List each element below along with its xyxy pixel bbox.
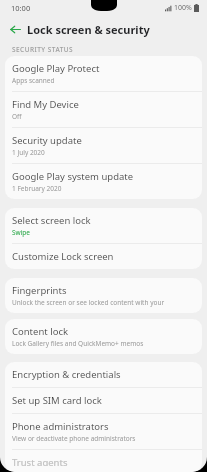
staticText: Customize Lock screen (12, 250, 114, 263)
staticText: Lock screen & security (27, 22, 150, 37)
button[interactable]: Encryption & credentials (5, 362, 202, 387)
staticText: Encryption & credentials (12, 368, 121, 381)
staticText: Google Play system update (12, 170, 134, 183)
staticText: 10:00 (11, 3, 31, 13)
button[interactable]: Fingerprints (5, 278, 202, 313)
staticText: Find My Device (12, 98, 79, 111)
button[interactable]: Customize Lock screen (5, 244, 202, 269)
staticText: Set up SIM card lock (12, 394, 102, 407)
button[interactable]: Back (6, 20, 24, 38)
staticText: Swipe (12, 228, 31, 237)
button[interactable]: Phone administrators (5, 414, 202, 449)
staticText: View or deactivate phone administrators (12, 434, 136, 443)
staticText: Lock Gallery files and QuickMemo+ memos (12, 339, 144, 348)
button[interactable]: Select screen lock (5, 208, 202, 243)
button[interactable]: Trust agents (5, 450, 202, 472)
button[interactable]: Content lock (5, 319, 202, 354)
staticText: Phone administrators (12, 420, 109, 433)
staticText: Google Play Protect (12, 62, 100, 75)
staticText: Fingerprints (12, 284, 67, 297)
button[interactable]: Google Play system update (5, 164, 202, 199)
staticText: Unlock the screen or see locked content … (12, 298, 195, 307)
button[interactable]: Find My Device (5, 92, 202, 127)
staticText: 100% (174, 3, 192, 13)
staticText: Trust agents (12, 456, 68, 466)
staticText: Security update (12, 134, 82, 147)
button[interactable]: Google Play Protect (5, 56, 202, 91)
button[interactable]: Set up SIM card lock (5, 388, 202, 413)
staticText: Select screen lock (12, 214, 91, 227)
staticText: 1 February 2020 (12, 184, 62, 193)
staticText: Apps scanned (12, 76, 55, 85)
staticText: Content lock (12, 325, 69, 338)
staticText: Off (12, 112, 22, 121)
staticText: SECURITY STATUS (12, 45, 74, 54)
button[interactable]: Security update (5, 128, 202, 163)
staticText: 1 July 2020 (12, 148, 45, 157)
